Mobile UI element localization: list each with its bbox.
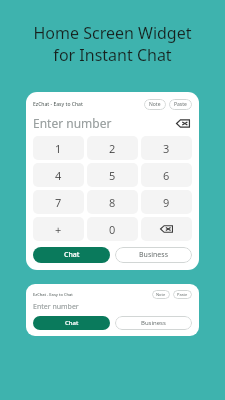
- button[interactable]: 6: [141, 163, 192, 187]
- staticText: Home Screen Widget for Instant Chat: [12, 22, 213, 66]
- staticText: EzChat - Easy to Chat: [33, 101, 83, 108]
- staticText: 1: [55, 141, 62, 156]
- staticText: 8: [109, 195, 116, 210]
- button[interactable]: Note: [144, 99, 166, 110]
- button[interactable]: Chat: [33, 247, 110, 263]
- staticText: Note: [156, 292, 166, 297]
- button[interactable]: Business: [115, 247, 192, 263]
- staticText: 6: [163, 168, 170, 183]
- staticText: 3: [163, 141, 170, 156]
- button[interactable]: Note: [152, 290, 170, 299]
- staticText: Business: [141, 319, 166, 327]
- button[interactable]: Backspace: [141, 217, 192, 241]
- button[interactable]: 2: [87, 136, 138, 160]
- button[interactable]: Business: [115, 316, 192, 330]
- staticText: EzChat - Easy to Chat: [33, 292, 73, 297]
- button[interactable]: Paste: [173, 290, 192, 299]
- staticText: Enter number: [33, 115, 112, 131]
- staticText: 5: [109, 168, 116, 183]
- staticText: +: [55, 222, 62, 237]
- button[interactable]: 8: [87, 190, 138, 214]
- staticText: 9: [163, 195, 170, 210]
- staticText: 2: [109, 141, 116, 156]
- button[interactable]: 1: [33, 136, 84, 160]
- button[interactable]: Paste: [169, 99, 192, 110]
- staticText: Chat: [64, 250, 80, 260]
- button[interactable]: 7: [33, 190, 84, 214]
- button[interactable]: 4: [33, 163, 84, 187]
- button[interactable]: 0: [87, 217, 138, 241]
- staticText: 0: [109, 222, 116, 237]
- button[interactable]: 5: [87, 163, 138, 187]
- button[interactable]: 9: [141, 190, 192, 214]
- staticText: Business: [139, 250, 169, 260]
- button[interactable]: Chat: [33, 316, 110, 330]
- staticText: 7: [55, 195, 62, 210]
- staticText: Chat: [65, 319, 79, 327]
- staticText: Paste: [177, 292, 188, 297]
- button[interactable]: Clear number: [174, 116, 192, 131]
- staticText: Enter number: [33, 302, 79, 312]
- staticText: Paste: [174, 101, 187, 108]
- button[interactable]: 3: [141, 136, 192, 160]
- button[interactable]: +: [33, 217, 84, 241]
- staticText: Note: [149, 101, 161, 108]
- button[interactable]: Enter number: [33, 302, 192, 312]
- staticText: 4: [55, 168, 62, 183]
- button[interactable]: Enter number: [33, 115, 192, 131]
